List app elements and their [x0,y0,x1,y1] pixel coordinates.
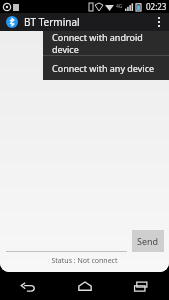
staticText: Send [137,235,159,247]
button[interactable]: Send [132,230,164,252]
staticText: Connect with android device [52,31,169,55]
button[interactable]: Recent apps [117,272,165,300]
staticText: BT Terminal [24,15,80,29]
staticText: Status : Not connect [0,256,169,266]
staticText: 02:23 [146,1,167,12]
button[interactable]: More options [149,13,169,31]
button[interactable]: Connect with android device [43,31,169,55]
button[interactable]: Connect with any device [43,56,169,80]
button[interactable]: Back [4,272,52,300]
staticText: Connect with any device [52,62,155,74]
button[interactable]: Home [61,272,109,300]
staticText: 4G [116,3,123,10]
button[interactable] [6,230,127,252]
